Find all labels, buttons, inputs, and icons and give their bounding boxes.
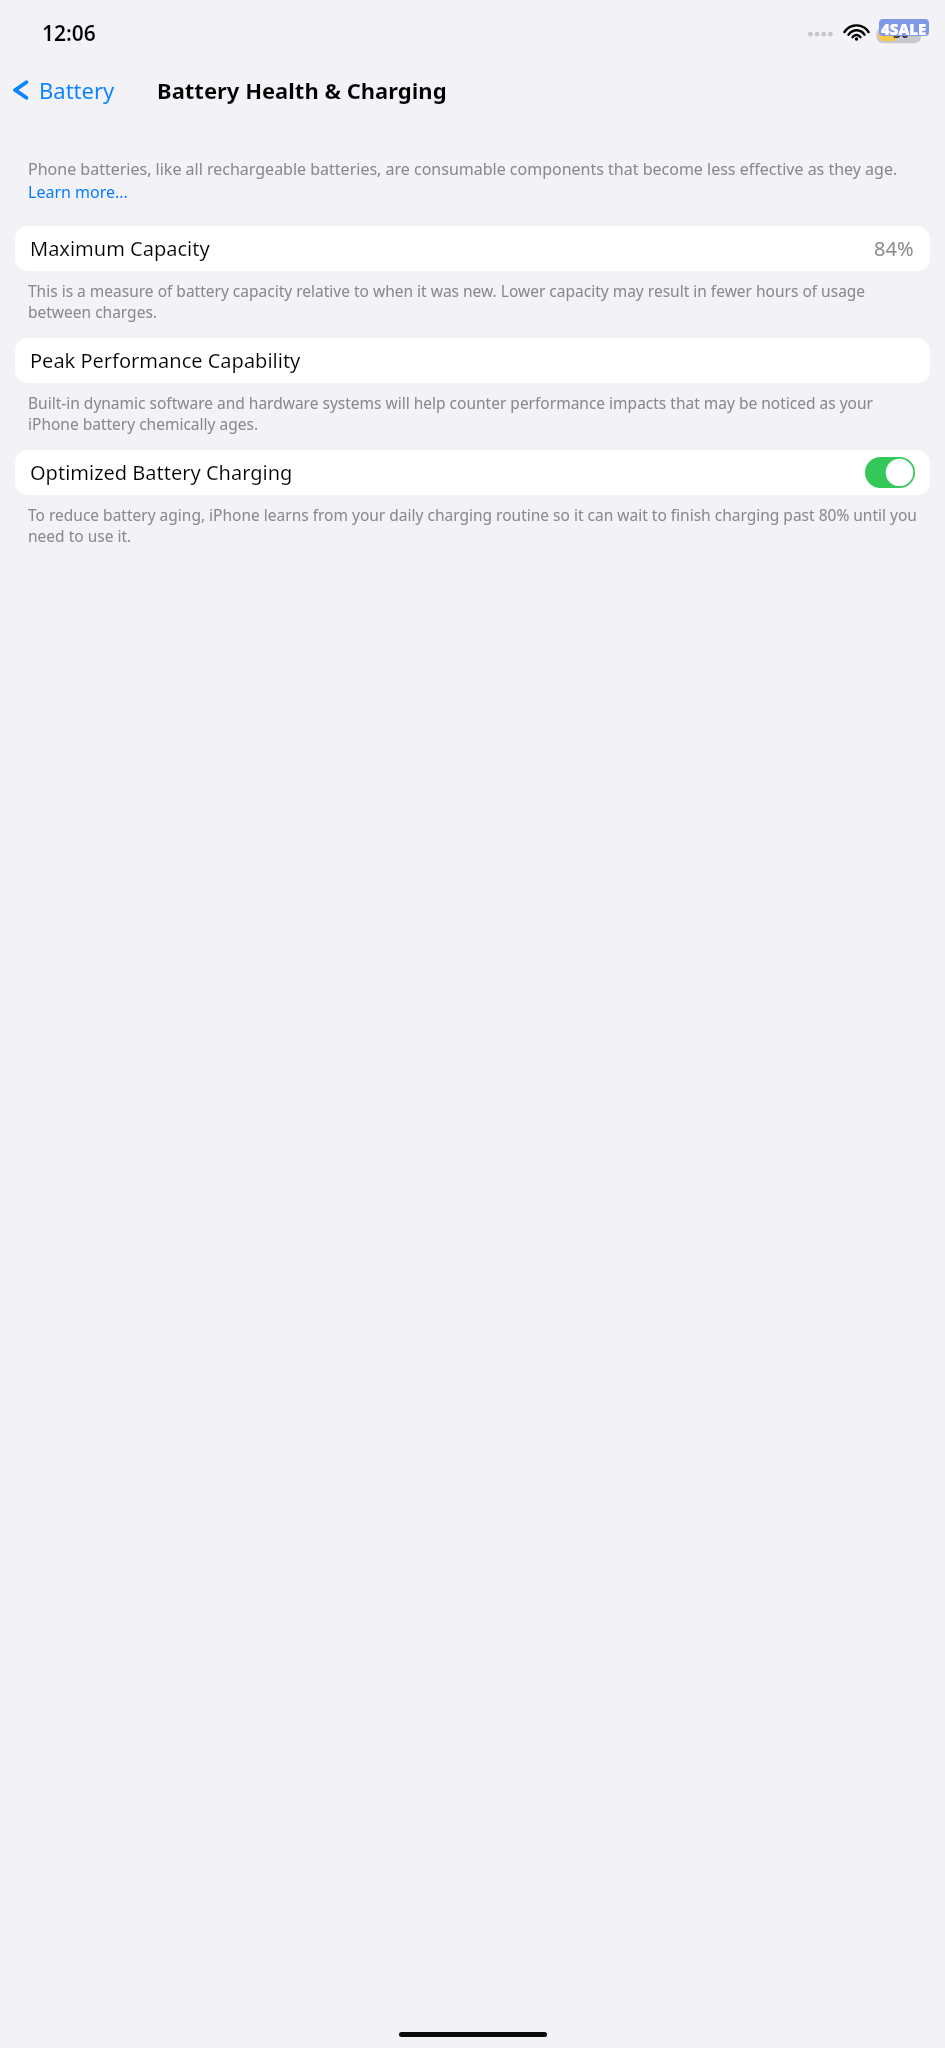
staticText: Battery xyxy=(39,75,115,105)
staticText: Maximum Capacity xyxy=(30,235,210,262)
staticText: This is a measure of battery capacity re… xyxy=(28,280,917,322)
staticText: 12:06 xyxy=(42,19,96,48)
staticText: Peak Performance Capability xyxy=(30,347,301,374)
staticText: To reduce battery aging, iPhone learns f… xyxy=(28,504,917,546)
staticText: 30 xyxy=(893,23,910,42)
button[interactable]: Optimized Battery Charging toggle, on xyxy=(865,457,915,488)
staticText: Battery Health & Charging xyxy=(157,75,447,105)
button[interactable]: Peak Performance Capability xyxy=(15,338,930,383)
button[interactable]: Maximum Capacity xyxy=(15,226,930,271)
button[interactable]: Optimized Battery Charging xyxy=(15,450,930,495)
staticText: Optimized Battery Charging xyxy=(30,459,293,486)
staticText: 84% xyxy=(874,235,914,262)
staticText: Built-in dynamic software and hardware s… xyxy=(28,392,917,434)
button[interactable]: Battery xyxy=(0,69,125,111)
button[interactable]: Phone batteries, like all rechargeable b… xyxy=(28,158,909,202)
staticText: 4SALE xyxy=(881,19,927,36)
